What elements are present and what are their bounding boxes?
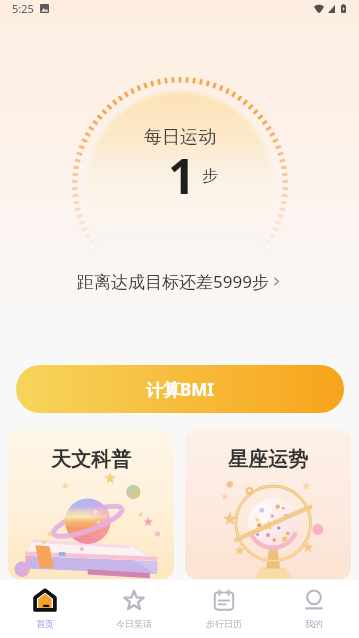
staticText: 首页	[36, 618, 54, 629]
button[interactable]: 步行日历	[179, 580, 269, 638]
staticText: 每日运动	[144, 126, 216, 149]
button[interactable]: 距离达成目标还差5999步	[73, 267, 286, 296]
staticText: 步行日历	[206, 618, 242, 629]
staticText: 天文科普	[51, 447, 131, 472]
staticText: 距离达成目标还差5999步	[77, 270, 269, 293]
button[interactable]: 首页	[0, 580, 89, 638]
button[interactable]: 天文科普	[8, 429, 174, 579]
staticText: 我的	[305, 618, 323, 629]
staticText: 1	[168, 143, 196, 208]
button[interactable]: 星座运势	[185, 429, 351, 579]
staticText: 5:25	[12, 1, 34, 16]
staticText: 今日笑话	[116, 618, 152, 629]
staticText: 步	[202, 166, 218, 186]
staticText: 星座运势	[228, 447, 308, 472]
button[interactable]: 今日笑话	[89, 580, 179, 638]
button[interactable]: 我的	[269, 580, 359, 638]
staticText: 计算BMI	[146, 378, 214, 401]
button[interactable]: 计算BMI	[16, 365, 344, 413]
